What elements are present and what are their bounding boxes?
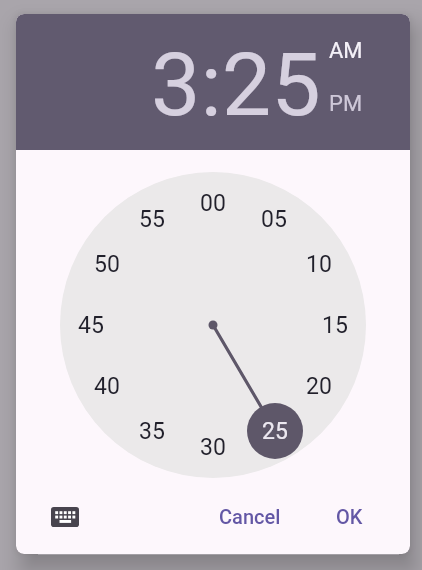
staticText: 15 [322,312,348,339]
staticText: 05 [261,206,287,233]
button[interactable]: AM [311,31,381,71]
button[interactable]: PM [311,84,381,124]
button[interactable]: Cancel [195,494,305,538]
staticText: 35 [139,418,165,445]
staticText: 25 [262,418,288,445]
staticText: Cancel [219,505,281,528]
button[interactable]: 15 [305,305,365,345]
staticText: 40 [94,373,120,400]
button[interactable]: 00 [183,183,243,223]
button[interactable]: 25 [247,403,303,459]
staticText: 3:25 [151,33,321,136]
staticText: OK [336,505,363,528]
staticText: 30 [200,434,226,461]
button[interactable]: 10 [289,244,349,284]
button[interactable]: 50 [77,244,137,284]
button[interactable]: 35 [122,411,182,451]
button[interactable]: 20 [289,366,349,406]
button[interactable]: OK [309,494,389,538]
staticText: 45 [78,312,104,339]
staticText: PM [329,91,363,117]
button[interactable] [43,499,87,535]
button[interactable]: 45 [61,305,121,345]
staticText: 20 [306,373,332,400]
button[interactable]: 40 [77,366,137,406]
staticText: 00 [200,190,226,217]
button[interactable]: 05 [244,199,304,239]
button[interactable]: 55 [122,199,182,239]
staticText: 10 [306,251,332,278]
staticText: 50 [94,251,120,278]
staticText: 55 [139,206,165,233]
staticText: AM [329,38,363,64]
button[interactable]: 30 [183,427,243,467]
